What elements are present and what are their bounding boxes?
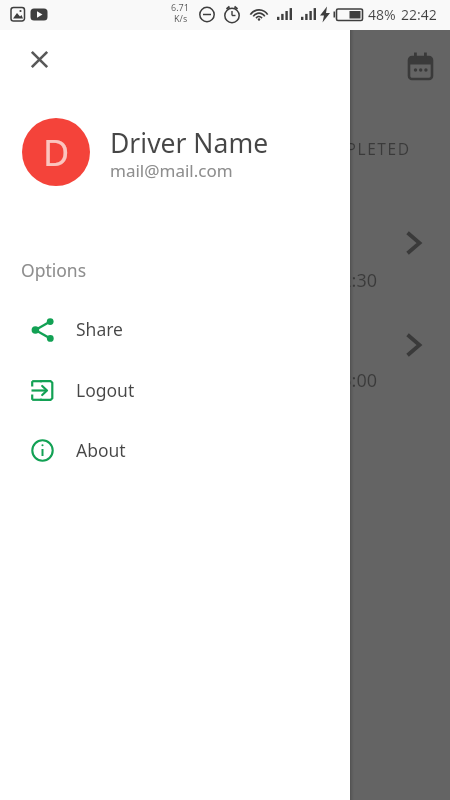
staticText: Logout bbox=[76, 378, 135, 402]
staticText: 48% bbox=[368, 5, 396, 24]
staticText: Driver Name bbox=[110, 125, 269, 161]
button[interactable]: Close drawer bbox=[17, 37, 62, 82]
button[interactable]: Share bbox=[0, 299, 350, 359]
button[interactable]: About bbox=[0, 420, 350, 480]
staticText: About bbox=[76, 438, 126, 462]
staticText: Options bbox=[21, 258, 87, 282]
staticText: 6.71 bbox=[171, 1, 189, 13]
button[interactable]: Logout bbox=[0, 360, 350, 420]
staticText: mail@mail.com bbox=[110, 159, 233, 182]
staticText: Share bbox=[76, 317, 123, 341]
staticText: 12:30 bbox=[331, 268, 378, 293]
staticText: 13:00 bbox=[331, 368, 378, 393]
staticText: COMPLETED bbox=[306, 138, 411, 159]
staticText: D bbox=[43, 128, 70, 177]
button[interactable]: Close navigation drawer bbox=[0, 30, 450, 800]
staticText: 22:42 bbox=[401, 5, 437, 24]
staticText: K/s bbox=[174, 12, 188, 24]
